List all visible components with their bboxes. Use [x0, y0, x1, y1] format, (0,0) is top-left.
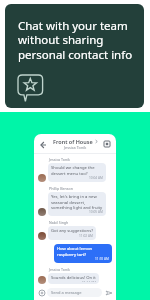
staticText: Should we change the dessert menu too?: [51, 165, 103, 176]
staticText: Chat with your team without sharing pers…: [18, 18, 133, 63]
button[interactable]: Back: [37, 139, 48, 150]
button[interactable]: Should we change the dessert menu too?: [48, 163, 106, 182]
other: Chat: [18, 75, 48, 105]
staticText: Jessica Tonik: [49, 267, 71, 272]
staticText: Jessica Tonik: [64, 145, 87, 150]
staticText: 10:04 AM: [89, 176, 103, 180]
button[interactable]: Sounds delicious! On it: [48, 273, 99, 284]
staticText: 11:02 AM: [79, 234, 93, 238]
button[interactable]: Chat with your team without sharing pers…: [5, 4, 144, 108]
staticText: Phillip Benson: [49, 186, 73, 191]
button[interactable]: Send a message: [47, 288, 102, 297]
staticText: 11:10 AM: [95, 257, 109, 261]
staticText: Got any suggestions?: [51, 228, 93, 234]
button[interactable]: How about lemon raspberry tart?: [54, 244, 112, 263]
staticText: Sounds delicious! On it: [51, 275, 96, 281]
staticText: Front of House: [53, 138, 93, 145]
button[interactable]: Details: [102, 139, 112, 149]
staticText: 10:05 AM: [89, 210, 103, 214]
staticText: Yes, let's bring in a new seasonal desse…: [51, 194, 103, 210]
button[interactable]: Yes, let's bring in a new seasonal desse…: [48, 192, 106, 216]
staticText: Nabil Singh: [49, 220, 69, 225]
staticText: Send a message: [51, 290, 82, 295]
button[interactable]: Got any suggestions?: [48, 226, 96, 240]
button[interactable]: Send: [104, 288, 113, 297]
staticText: 11:14 AM: [82, 281, 96, 282]
staticText: How about lemon raspberry tart?: [57, 246, 109, 257]
button[interactable]: Add attachment: [37, 288, 46, 297]
staticText: Jessica Tonik: [49, 157, 71, 162]
